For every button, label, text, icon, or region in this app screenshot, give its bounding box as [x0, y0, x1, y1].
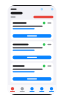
button[interactable] — [13, 56, 51, 59]
button[interactable] — [13, 34, 51, 38]
button[interactable]: Home — [8, 85, 17, 94]
button[interactable]: Add — [27, 85, 37, 94]
button[interactable]: Alerts — [37, 85, 47, 94]
button[interactable]: Search — [17, 85, 27, 94]
button[interactable] — [13, 77, 51, 81]
button[interactable]: Profile — [47, 85, 56, 94]
